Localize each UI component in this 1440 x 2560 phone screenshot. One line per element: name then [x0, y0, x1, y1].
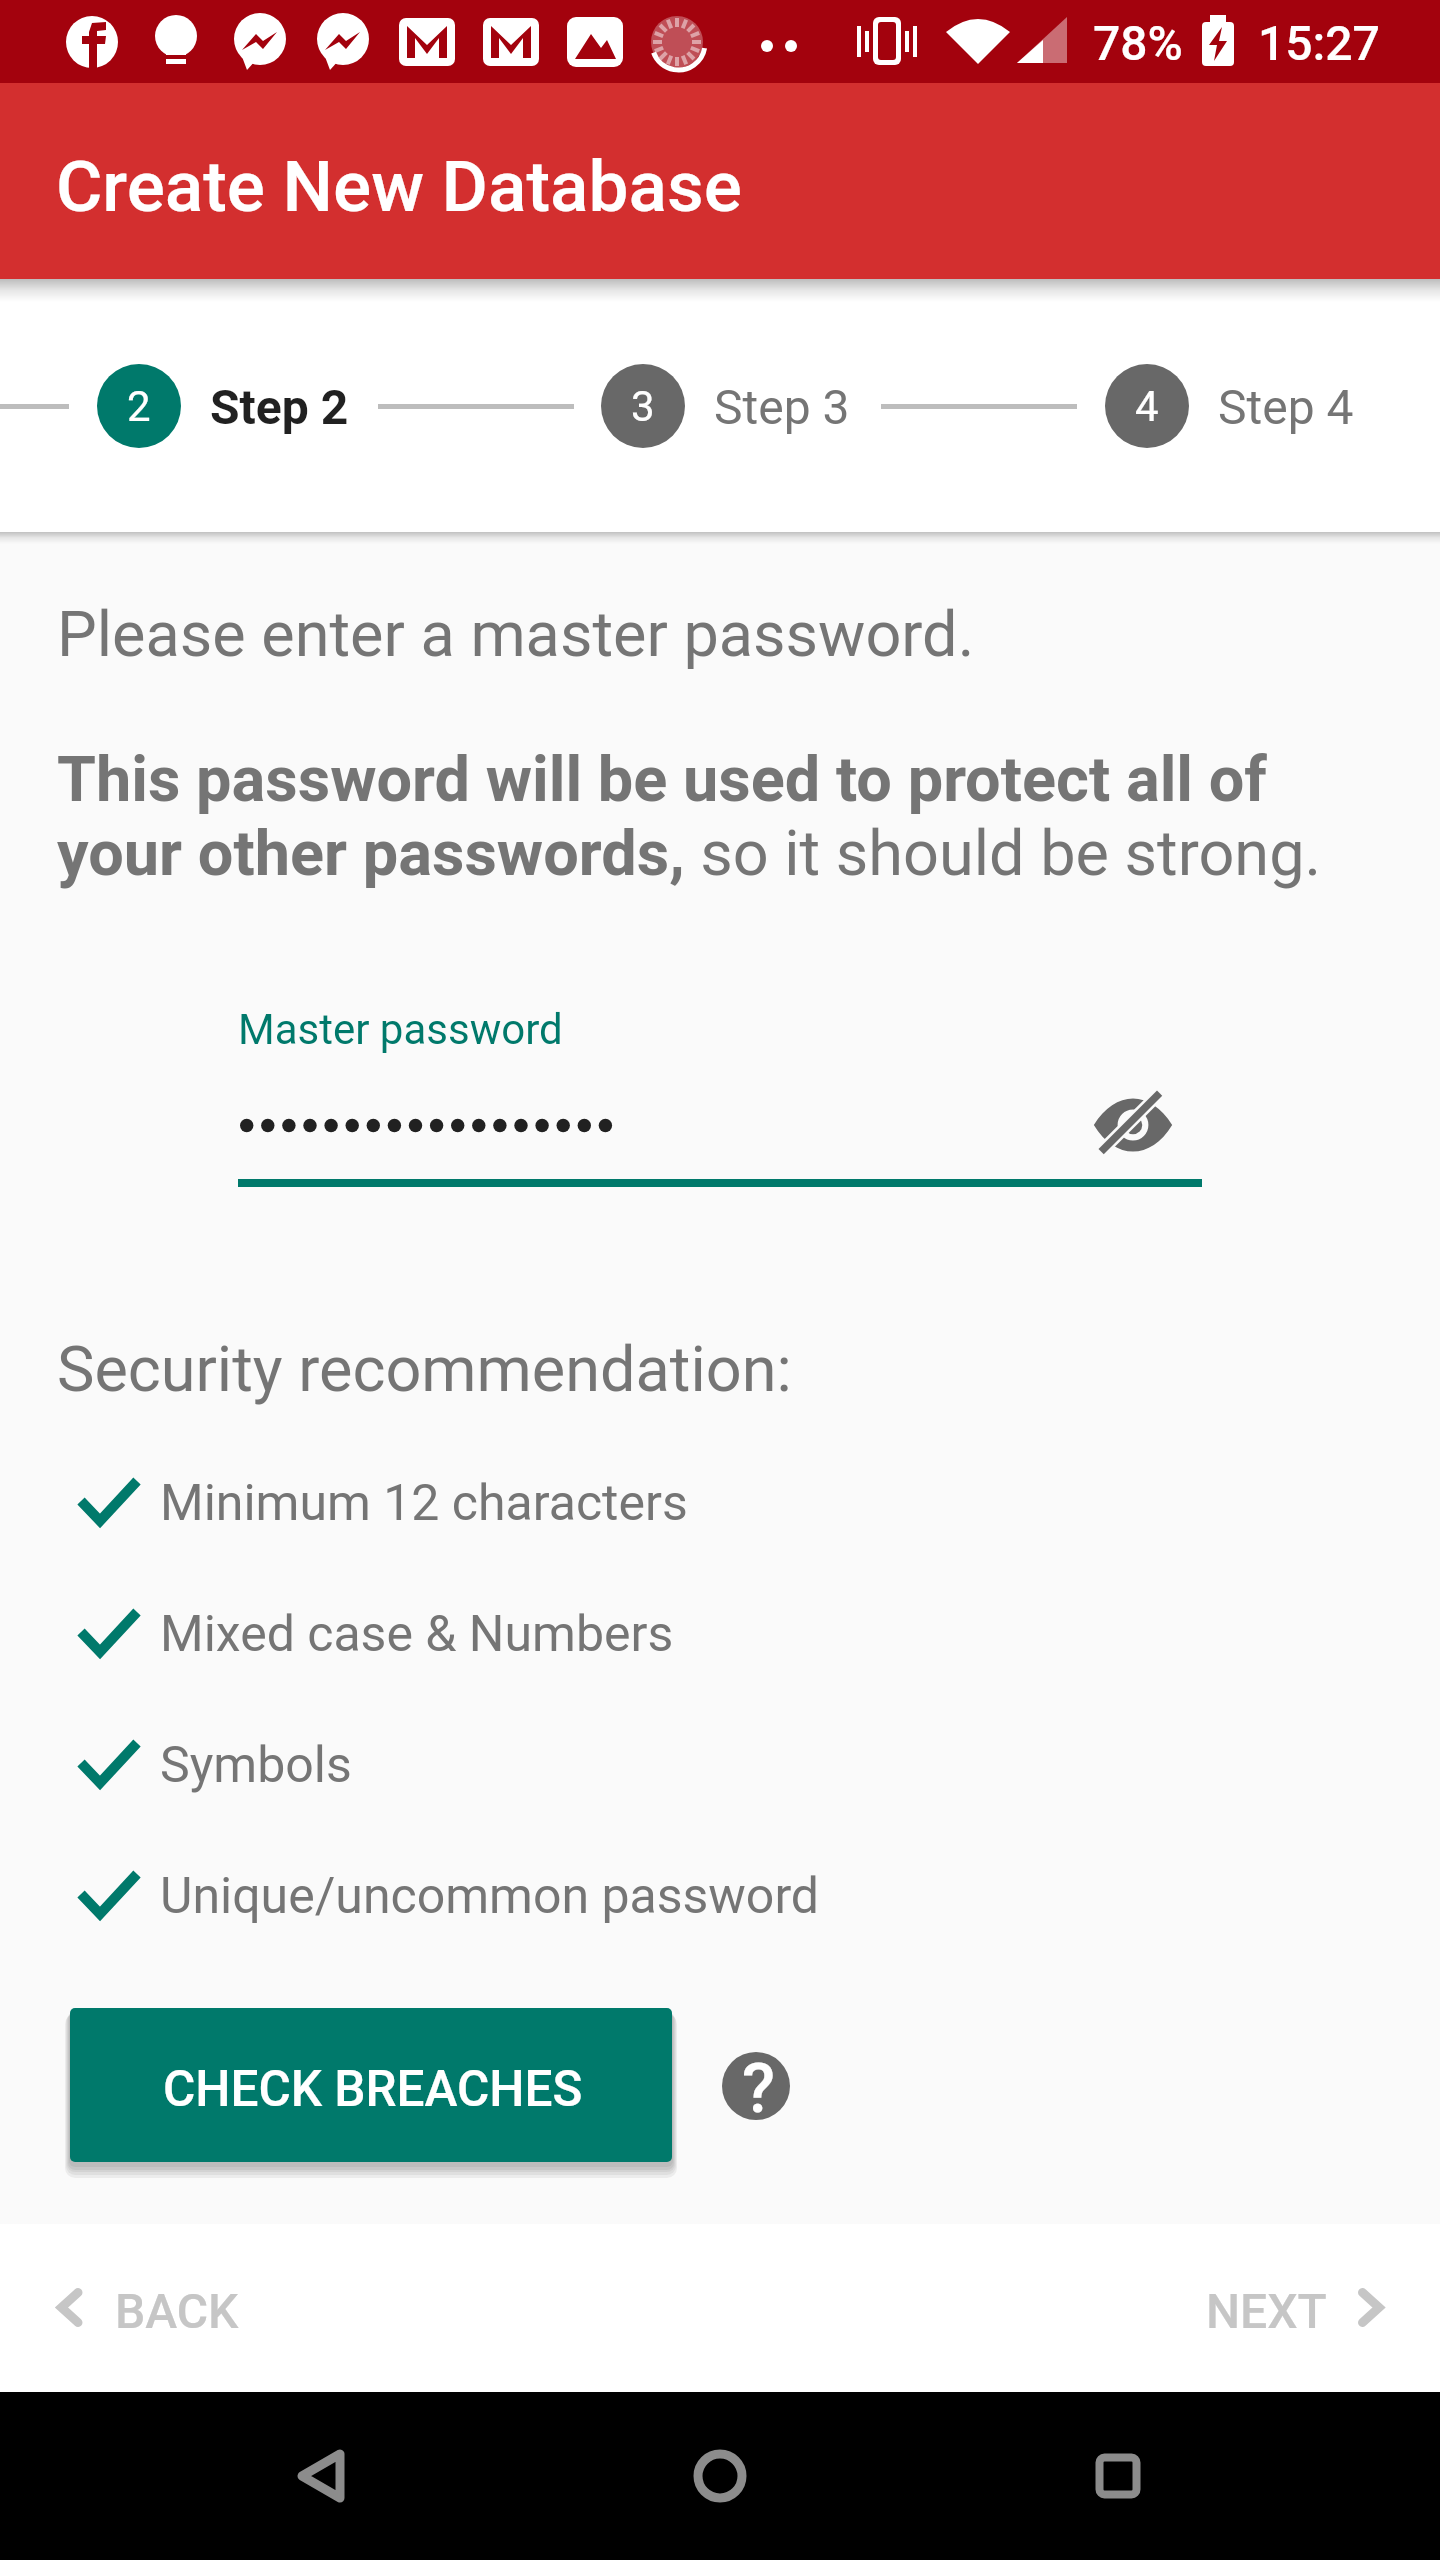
button[interactable]: Minimum 12 characters: [57, 1441, 1257, 1551]
button[interactable]: Symbols: [57, 1703, 1257, 1813]
staticText: BACK: [115, 2283, 239, 2339]
staticText: This password will be used to protect al…: [57, 743, 1389, 890]
staticText: CHECK BREACHES: [163, 2060, 583, 2118]
staticText: Symbols: [160, 1736, 352, 1795]
staticText: NEXT: [1206, 2283, 1327, 2339]
staticText: Minimum 12 characters: [160, 1474, 688, 1533]
staticText: Step 2: [210, 379, 349, 435]
button[interactable]: Show password: [1089, 1081, 1177, 1169]
staticText: Please enter a master password.: [57, 598, 975, 672]
button[interactable]: Help: [722, 2052, 790, 2120]
staticText: 4: [1135, 382, 1159, 431]
staticText: Step 4: [1218, 379, 1354, 435]
button[interactable]: Back: [261, 2416, 381, 2536]
button[interactable]: NEXT: [1180, 2256, 1410, 2366]
button[interactable]: CHECK BREACHES: [70, 2008, 672, 2162]
button[interactable]: 4: [1105, 364, 1189, 448]
staticText: 3: [631, 382, 655, 431]
staticText: Step 3: [714, 379, 850, 435]
staticText: Create New Database: [56, 145, 742, 228]
staticText: Unique/uncommon password: [160, 1867, 820, 1926]
staticText: 15:27: [1258, 15, 1380, 71]
staticText: Master password: [238, 1005, 563, 1054]
button[interactable]: Mixed case & Numbers: [57, 1572, 1257, 1682]
staticText: ?: [742, 2052, 776, 2117]
staticText: 2: [127, 382, 151, 431]
staticText: Mixed case & Numbers: [160, 1605, 674, 1664]
staticText: Security recommendation:: [57, 1333, 792, 1407]
button[interactable]: BACK: [30, 2256, 280, 2366]
button[interactable]: 2: [97, 364, 181, 448]
button[interactable]: 3: [601, 364, 685, 448]
button[interactable]: Unique/uncommon password: [57, 1834, 1257, 1944]
button[interactable]: Recent apps: [1058, 2416, 1178, 2536]
staticText: 78%: [1093, 15, 1183, 71]
button[interactable]: Home: [660, 2416, 780, 2536]
